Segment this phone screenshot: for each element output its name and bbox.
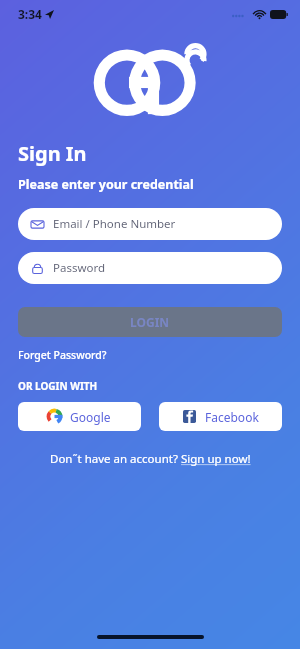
staticText: Facebook [205,409,259,425]
staticText: OR LOGIN WITH [18,379,98,393]
button[interactable]: Google [18,402,141,431]
button[interactable]: Email / Phone Number [18,208,282,240]
staticText: Don˝t have an account? [50,451,181,467]
staticText: 3:34 [18,6,42,22]
staticText: Forget Password? [18,348,107,362]
button[interactable]: Password [18,252,282,284]
button[interactable]: Facebook [159,402,282,431]
staticText: Please enter your credential [18,176,194,193]
staticText: Sign up now! [181,451,251,467]
button[interactable]: Sign up now! [181,451,251,467]
button[interactable]: Forget Password? [18,348,107,362]
staticText: Google [70,409,111,425]
staticText: LOGIN [130,314,170,330]
staticText: Sign In [18,140,87,167]
button[interactable]: LOGIN [18,307,282,337]
staticText: Email / Phone Number [53,216,176,232]
staticText: Password [53,260,106,276]
